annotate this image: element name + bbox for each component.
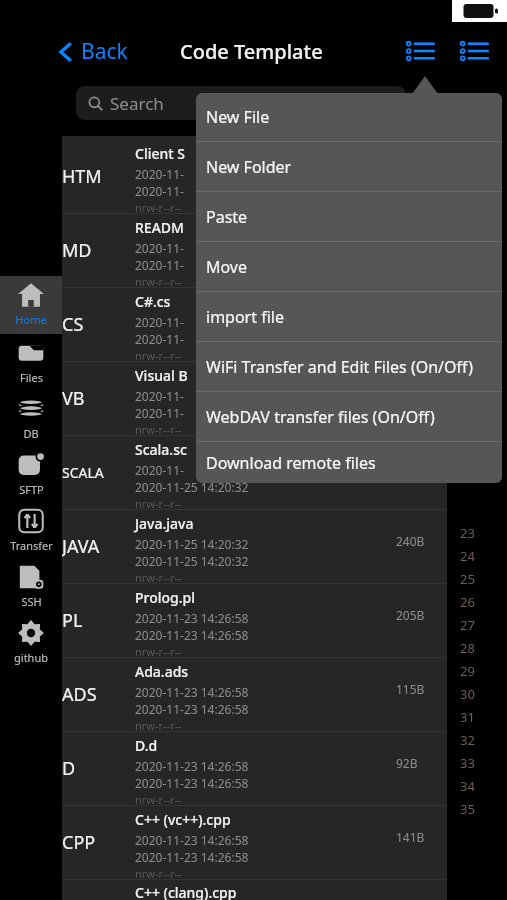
staticText: 2020-11- [135, 257, 184, 273]
staticText: 2020-11-25 14:20:32 [135, 479, 249, 495]
button[interactable]: SCALA [62, 436, 447, 510]
staticText: 141B [396, 829, 425, 845]
button[interactable]: List view options [399, 31, 443, 71]
staticText: nrw-r--r-- [135, 570, 182, 583]
button[interactable]: github [0, 614, 62, 670]
staticText: C#.cs [135, 292, 171, 311]
button[interactable]: New Folder [196, 142, 502, 191]
staticText: C++ (vc++).cpp [135, 810, 231, 829]
staticText: 26 [460, 593, 475, 611]
staticText: nrw-r--r-- [135, 866, 182, 879]
button[interactable]: Paste [196, 192, 502, 241]
staticText: Home [15, 312, 47, 327]
staticText: Files [20, 370, 43, 385]
button[interactable]: SFTP [0, 446, 62, 502]
staticText: PL [62, 608, 135, 633]
button[interactable]: VB [62, 362, 447, 436]
staticText: 2020-11- [135, 183, 184, 199]
staticText: READM [135, 218, 184, 237]
button[interactable]: CPP [62, 806, 447, 880]
staticText: Client S [135, 144, 185, 163]
staticText: 2020-11- [135, 331, 184, 347]
staticText: 2020-11-23 14:26:58 [135, 758, 249, 774]
staticText: Java.java [135, 514, 194, 533]
staticText: 35 [460, 800, 475, 818]
staticText: 31 [460, 708, 475, 726]
staticText: 2020-11-23 14:26:58 [135, 610, 249, 626]
button[interactable]: Files [0, 334, 62, 390]
staticText: nrw-r--r-- [135, 718, 182, 731]
button[interactable]: JAVA [62, 510, 447, 584]
staticText: JAVA [62, 534, 135, 559]
staticText: Prolog.pl [135, 588, 196, 607]
staticText: 115B [396, 681, 425, 697]
button[interactable]: MD [62, 214, 447, 288]
staticText: github [14, 650, 48, 665]
staticText: 2020-11-23 14:26:58 [135, 701, 249, 717]
button[interactable]: HTM [62, 140, 447, 214]
staticText: Move [206, 256, 248, 278]
staticText: WebDAV transfer files (On/Off) [206, 406, 435, 428]
staticText: Transfer [10, 538, 53, 553]
staticText: 2020-11- [135, 314, 184, 330]
staticText: 23 [460, 524, 475, 542]
staticText: 28 [460, 639, 475, 657]
staticText: 205B [396, 607, 425, 623]
button[interactable]: C++ (clang).cpp [62, 880, 447, 900]
button[interactable]: WebDAV transfer files (On/Off) [196, 392, 502, 441]
staticText: 2020-11-23 14:26:58 [135, 849, 249, 865]
button[interactable]: WiFi Transfer and Edit Files (On/Off) [196, 342, 502, 391]
staticText: 2020-11-23 14:26:58 [135, 684, 249, 700]
staticText: Paste [206, 206, 248, 228]
staticText: nrw-r--r-- [135, 644, 182, 657]
staticText: 2020-11- [135, 388, 184, 404]
staticText: CPP [62, 830, 135, 855]
staticText: HTM [62, 164, 135, 189]
staticText: 240B [396, 533, 425, 549]
button[interactable]: DB [0, 390, 62, 446]
staticText: Visual B [135, 366, 188, 385]
staticText: Scala.sc [135, 440, 187, 459]
button[interactable]: Transfer [0, 502, 62, 558]
staticText: MD [62, 238, 135, 263]
staticText: 2020-11-25 14:20:32 [135, 553, 249, 569]
staticText: Back [81, 37, 128, 66]
staticText: nrw-r--r-- [135, 422, 182, 435]
button[interactable]: Move [196, 242, 502, 291]
button[interactable]: Back [58, 37, 128, 66]
staticText: SCALA [62, 463, 135, 482]
button[interactable]: Home [0, 276, 62, 334]
staticText: nrw-r--r-- [135, 200, 182, 213]
button[interactable]: D [62, 732, 447, 806]
staticText: 32 [460, 731, 475, 749]
button[interactable]: Download remote files [196, 442, 502, 483]
staticText: 2020-11- [135, 462, 184, 478]
button[interactable]: PL [62, 584, 447, 658]
staticText: 2020-11- [135, 240, 184, 256]
staticText: 2020-11- [135, 166, 184, 182]
button[interactable]: Search [76, 86, 406, 120]
button[interactable]: New File [196, 93, 502, 141]
staticText: 2020-11- [135, 405, 184, 421]
staticText: Download remote files [206, 452, 376, 474]
staticText: 2020-11-23 14:26:58 [135, 832, 249, 848]
button[interactable]: CS [62, 288, 447, 362]
staticText: 27 [460, 616, 475, 634]
button[interactable]: More actions [453, 31, 497, 71]
button[interactable]: ADS [62, 658, 447, 732]
staticText: SSH [21, 594, 42, 609]
button[interactable]: SSH [0, 558, 62, 614]
button[interactable]: import file [196, 292, 502, 341]
staticText: 30 [460, 685, 475, 703]
staticText: Ada.ads [135, 662, 189, 681]
staticText: 34 [460, 777, 475, 795]
staticText: nrw-r--r-- [135, 792, 182, 805]
staticText: 29 [460, 662, 475, 680]
staticText: 92B [396, 755, 418, 771]
staticText: CS [62, 312, 135, 337]
staticText: 2020-11-23 14:26:58 [135, 627, 249, 643]
staticText: DB [23, 426, 39, 441]
staticText: C++ (clang).cpp [135, 883, 237, 900]
staticText: ADS [62, 682, 135, 707]
staticText: nrw-r--r-- [135, 496, 182, 509]
